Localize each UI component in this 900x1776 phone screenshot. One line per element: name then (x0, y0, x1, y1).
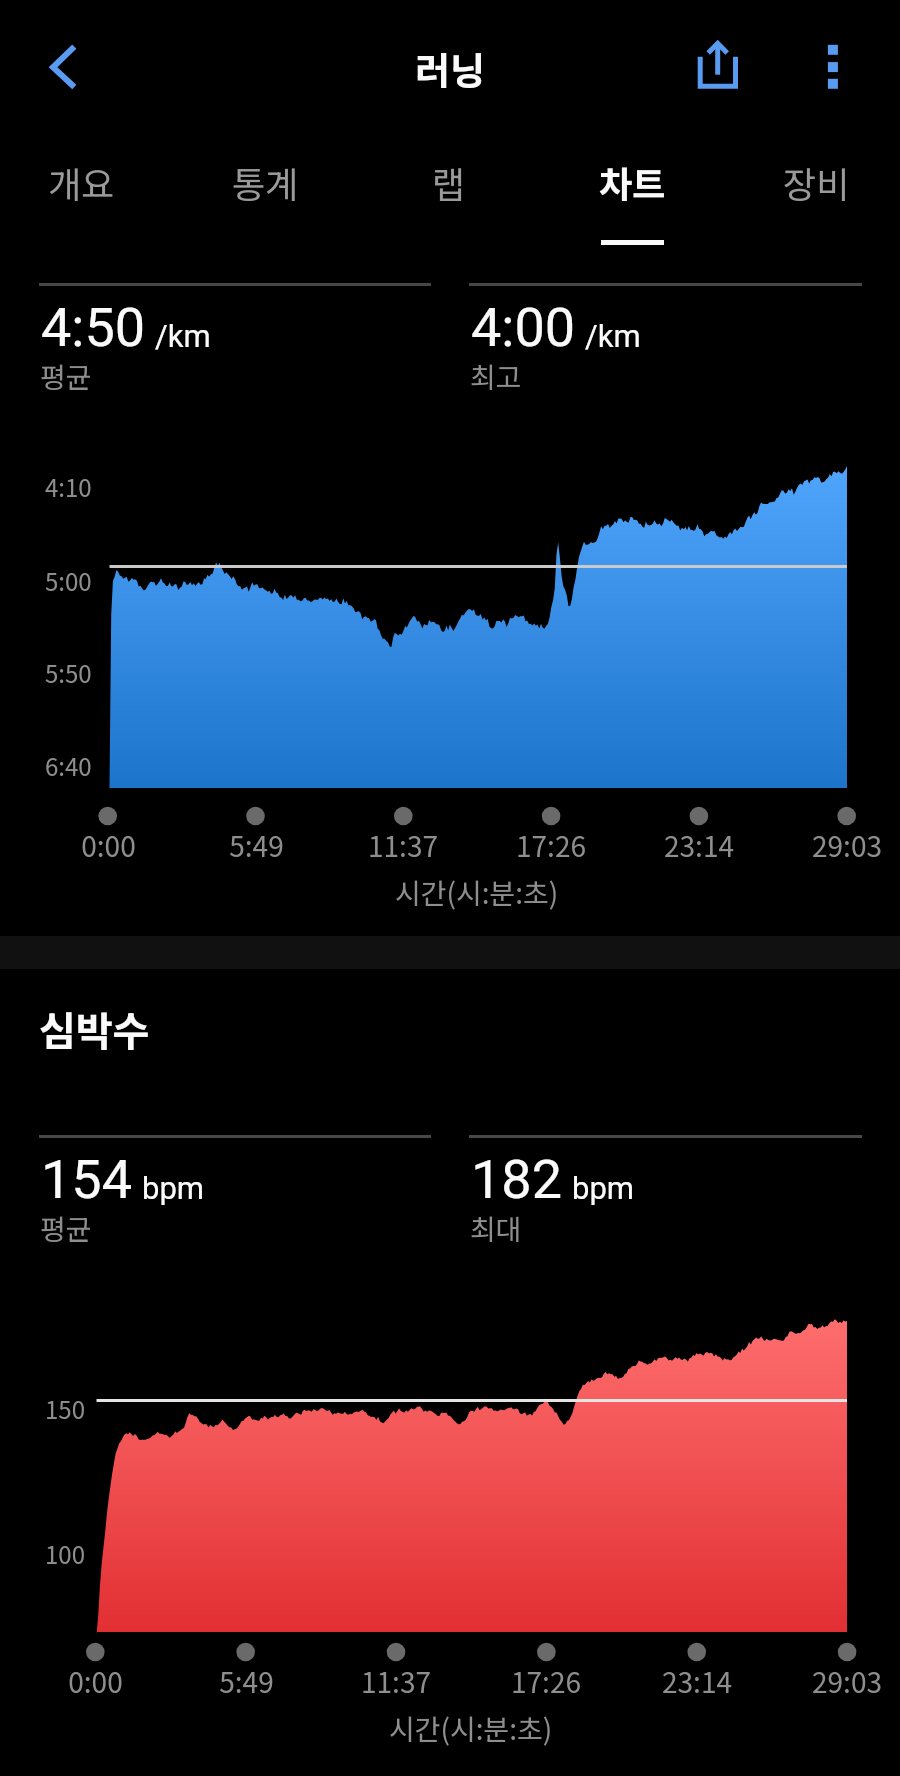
staticText: 5:50 (45, 655, 92, 690)
staticText: /km (585, 318, 641, 354)
staticText: 최고 (470, 356, 522, 397)
staticText: 0:00 (68, 1661, 123, 1702)
staticText: 장비 (783, 156, 850, 208)
staticText: 6:40 (45, 748, 92, 783)
staticText: 차트 (599, 156, 666, 208)
staticText: 5:49 (219, 1661, 274, 1702)
staticText: /km (155, 318, 211, 354)
staticText: 29:03 (812, 1661, 882, 1702)
staticText: 통계 (232, 156, 299, 208)
button[interactable]: 통계 (175, 133, 355, 248)
staticText: 4:50 (41, 296, 146, 359)
button[interactable]: More options (790, 24, 876, 110)
staticText: 23:14 (664, 825, 734, 866)
staticText: 154 (41, 1148, 133, 1211)
staticText: 17:26 (516, 825, 586, 866)
staticText: 23:14 (662, 1661, 732, 1702)
staticText: 150 (45, 1391, 85, 1426)
staticText: 랩 (432, 156, 466, 208)
staticText: 평균 (40, 1208, 92, 1249)
staticText: 17:26 (511, 1661, 581, 1702)
staticText: 4:00 (471, 296, 576, 359)
staticText: 100 (45, 1536, 85, 1571)
button[interactable]: Back (20, 24, 106, 110)
staticText: 11:37 (368, 825, 438, 866)
staticText: 심박수 (39, 1000, 150, 1058)
staticText: 5:00 (45, 563, 92, 598)
button[interactable]: 개요 (0, 133, 171, 248)
staticText: bpm (142, 1170, 204, 1206)
staticText: 러닝 (415, 41, 485, 96)
staticText: 시간(시:분:초) (395, 872, 559, 913)
button[interactable]: Share (675, 24, 761, 110)
button[interactable]: 장비 (726, 133, 900, 248)
staticText: 29:03 (812, 825, 882, 866)
staticText: 5:49 (229, 825, 284, 866)
staticText: 개요 (48, 156, 115, 208)
staticText: 11:37 (361, 1661, 431, 1702)
staticText: bpm (572, 1170, 634, 1206)
button[interactable]: 랩 (359, 133, 539, 248)
staticText: 평균 (40, 356, 92, 397)
button[interactable]: 차트 (542, 133, 722, 248)
staticText: 최대 (470, 1208, 522, 1249)
staticText: 182 (471, 1148, 563, 1211)
staticText: 4:10 (45, 469, 92, 504)
staticText: 0:00 (81, 825, 136, 866)
staticText: 시간(시:분:초) (389, 1708, 553, 1749)
